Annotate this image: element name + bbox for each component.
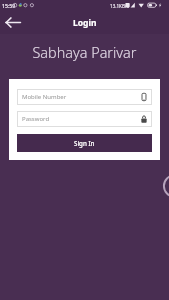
staticText: Login <box>73 17 97 29</box>
button[interactable]: Mobile Number <box>22 89 147 105</box>
button[interactable]: Sign In <box>17 134 152 152</box>
staticText: Password <box>22 115 141 123</box>
staticText: Sign In <box>74 139 95 147</box>
button[interactable]: Back <box>1 11 24 34</box>
staticText: Sabhaya Parivar <box>0 43 169 63</box>
staticText: Mobile Number <box>22 93 141 101</box>
staticText: 15:59 <box>2 2 16 9</box>
staticText: 13.1KB/s <box>110 3 129 9</box>
button[interactable]: Password <box>22 111 147 127</box>
